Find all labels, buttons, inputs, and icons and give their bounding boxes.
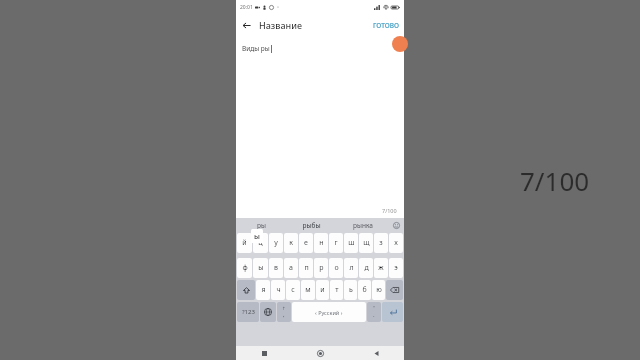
button[interactable]: с — [286, 280, 300, 300]
button[interactable]: ↑ — [277, 302, 291, 322]
button[interactable]: рыбы — [286, 218, 337, 233]
staticText: ы — [254, 231, 260, 241]
staticText: в — [274, 263, 278, 273]
button[interactable]: Back — [236, 15, 256, 35]
staticText: з — [379, 238, 383, 248]
button[interactable]: Add — [392, 36, 408, 52]
staticText: рынка — [353, 221, 373, 230]
button[interactable]: э — [389, 258, 403, 278]
staticText: ф — [242, 263, 248, 273]
button[interactable]: р — [314, 258, 328, 278]
staticText: э — [394, 263, 398, 273]
button[interactable]: л — [344, 258, 358, 278]
staticText: ↑ — [282, 306, 286, 311]
button[interactable]: ?123 — [237, 302, 259, 322]
button[interactable]: ‹ Русский › — [292, 302, 366, 322]
staticText: ь — [349, 285, 353, 295]
staticText: и — [320, 285, 325, 295]
button[interactable]: Emoji — [388, 218, 404, 233]
button[interactable]: рынка — [337, 218, 388, 233]
staticText: я — [261, 285, 266, 295]
button[interactable]: н — [314, 233, 328, 253]
staticText: ры — [257, 221, 266, 230]
staticText: г — [334, 238, 338, 248]
button[interactable]: й — [237, 233, 252, 253]
button[interactable]: х — [389, 233, 403, 253]
staticText: л — [349, 263, 354, 273]
button[interactable]: " — [367, 302, 381, 322]
button[interactable]: ц — [253, 233, 268, 253]
staticText: ш — [348, 238, 355, 248]
staticText: ч — [276, 285, 281, 295]
button[interactable]: м — [301, 280, 315, 300]
staticText: м — [305, 285, 311, 295]
staticText: ‹ Русский › — [315, 309, 343, 316]
button[interactable]: Shift — [237, 280, 255, 300]
button[interactable]: г — [329, 233, 343, 253]
button[interactable]: Back — [348, 346, 404, 360]
staticText: ц — [258, 238, 263, 248]
button[interactable]: ы — [253, 258, 268, 278]
button[interactable]: е — [299, 233, 313, 253]
staticText: п — [304, 263, 309, 273]
staticText: р — [319, 263, 324, 273]
staticText: 20:01 — [240, 4, 253, 11]
staticText: 7/100 — [520, 163, 590, 198]
button[interactable]: Backspace — [386, 280, 403, 300]
button[interactable]: ф — [237, 258, 252, 278]
staticText: у — [274, 238, 278, 248]
button[interactable]: ж — [374, 258, 388, 278]
button[interactable]: ь — [344, 280, 357, 300]
staticText: х — [394, 238, 398, 248]
staticText: б — [362, 285, 367, 295]
staticText: , — [283, 311, 285, 319]
staticText: 7/100 — [382, 207, 397, 214]
staticText: ?123 — [242, 308, 255, 316]
button[interactable]: ч — [271, 280, 285, 300]
button[interactable]: ГОТОВО — [368, 18, 404, 33]
staticText: т — [335, 285, 339, 295]
button[interactable]: у — [269, 233, 283, 253]
staticText: с — [291, 285, 295, 295]
button[interactable]: в — [269, 258, 283, 278]
button[interactable]: я — [256, 280, 270, 300]
staticText: а — [289, 263, 293, 273]
staticText: рыбы — [302, 221, 321, 230]
button[interactable]: з — [374, 233, 388, 253]
button[interactable]: Home — [292, 346, 348, 360]
button[interactable]: а — [284, 258, 298, 278]
button[interactable]: о — [329, 258, 343, 278]
staticText: Название — [259, 19, 303, 31]
button[interactable]: д — [359, 258, 373, 278]
button[interactable]: ры — [236, 218, 286, 233]
button[interactable]: Enter — [382, 302, 403, 322]
staticText: Виды ры — [242, 44, 270, 53]
staticText: н — [319, 238, 324, 248]
button[interactable]: т — [330, 280, 343, 300]
staticText: о — [334, 263, 339, 273]
staticText: е — [304, 238, 308, 248]
button[interactable]: б — [358, 280, 371, 300]
staticText: й — [242, 238, 247, 248]
button[interactable]: Change language — [260, 302, 276, 322]
staticText: " — [373, 305, 375, 311]
staticText: д — [364, 263, 369, 273]
button[interactable]: щ — [359, 233, 373, 253]
staticText: ГОТОВО — [373, 21, 399, 30]
staticText: щ — [363, 238, 370, 248]
staticText: . — [373, 311, 375, 319]
staticText: ы — [258, 263, 264, 273]
button[interactable]: к — [284, 233, 298, 253]
button[interactable]: и — [316, 280, 329, 300]
staticText: ю — [376, 285, 382, 295]
staticText: ж — [378, 263, 384, 273]
button[interactable]: п — [299, 258, 313, 278]
button[interactable]: ш — [344, 233, 358, 253]
button[interactable]: Recents — [236, 346, 292, 360]
staticText: к — [289, 238, 293, 248]
button[interactable]: ю — [372, 280, 385, 300]
